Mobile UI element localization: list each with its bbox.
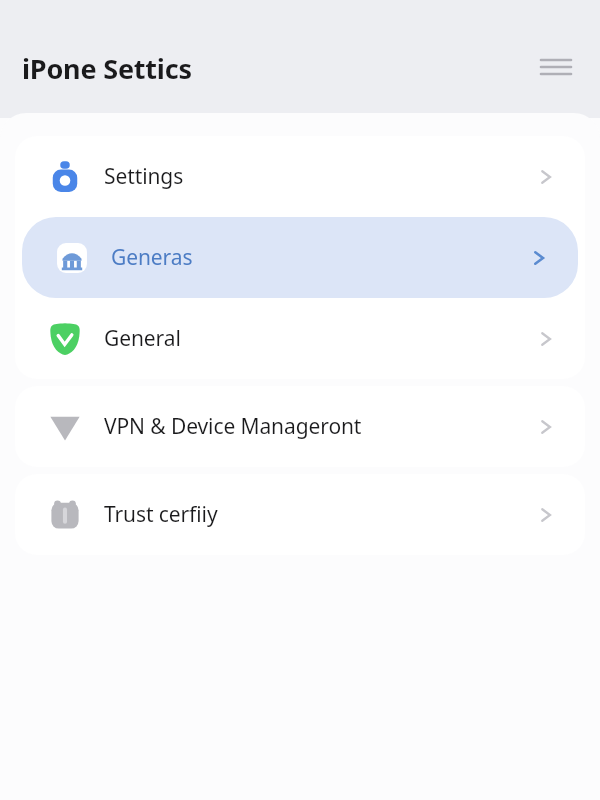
button[interactable]: VPN & Device Manageront bbox=[15, 386, 585, 467]
staticText: Generas bbox=[111, 243, 193, 272]
staticText: iPone Settics bbox=[22, 50, 192, 87]
staticText: Trust cerfiiy bbox=[104, 500, 218, 529]
button[interactable]: Menu bbox=[532, 43, 580, 91]
button[interactable]: iPone Settics bbox=[22, 50, 192, 87]
staticText: General bbox=[104, 324, 181, 353]
staticText: VPN & Device Manageront bbox=[104, 412, 362, 441]
button[interactable]: Settings bbox=[15, 136, 585, 217]
staticText: Settings bbox=[104, 162, 184, 191]
button[interactable]: General bbox=[15, 298, 585, 379]
button[interactable]: Trust cerfiiy bbox=[15, 474, 585, 555]
button[interactable]: Generas bbox=[22, 217, 578, 298]
